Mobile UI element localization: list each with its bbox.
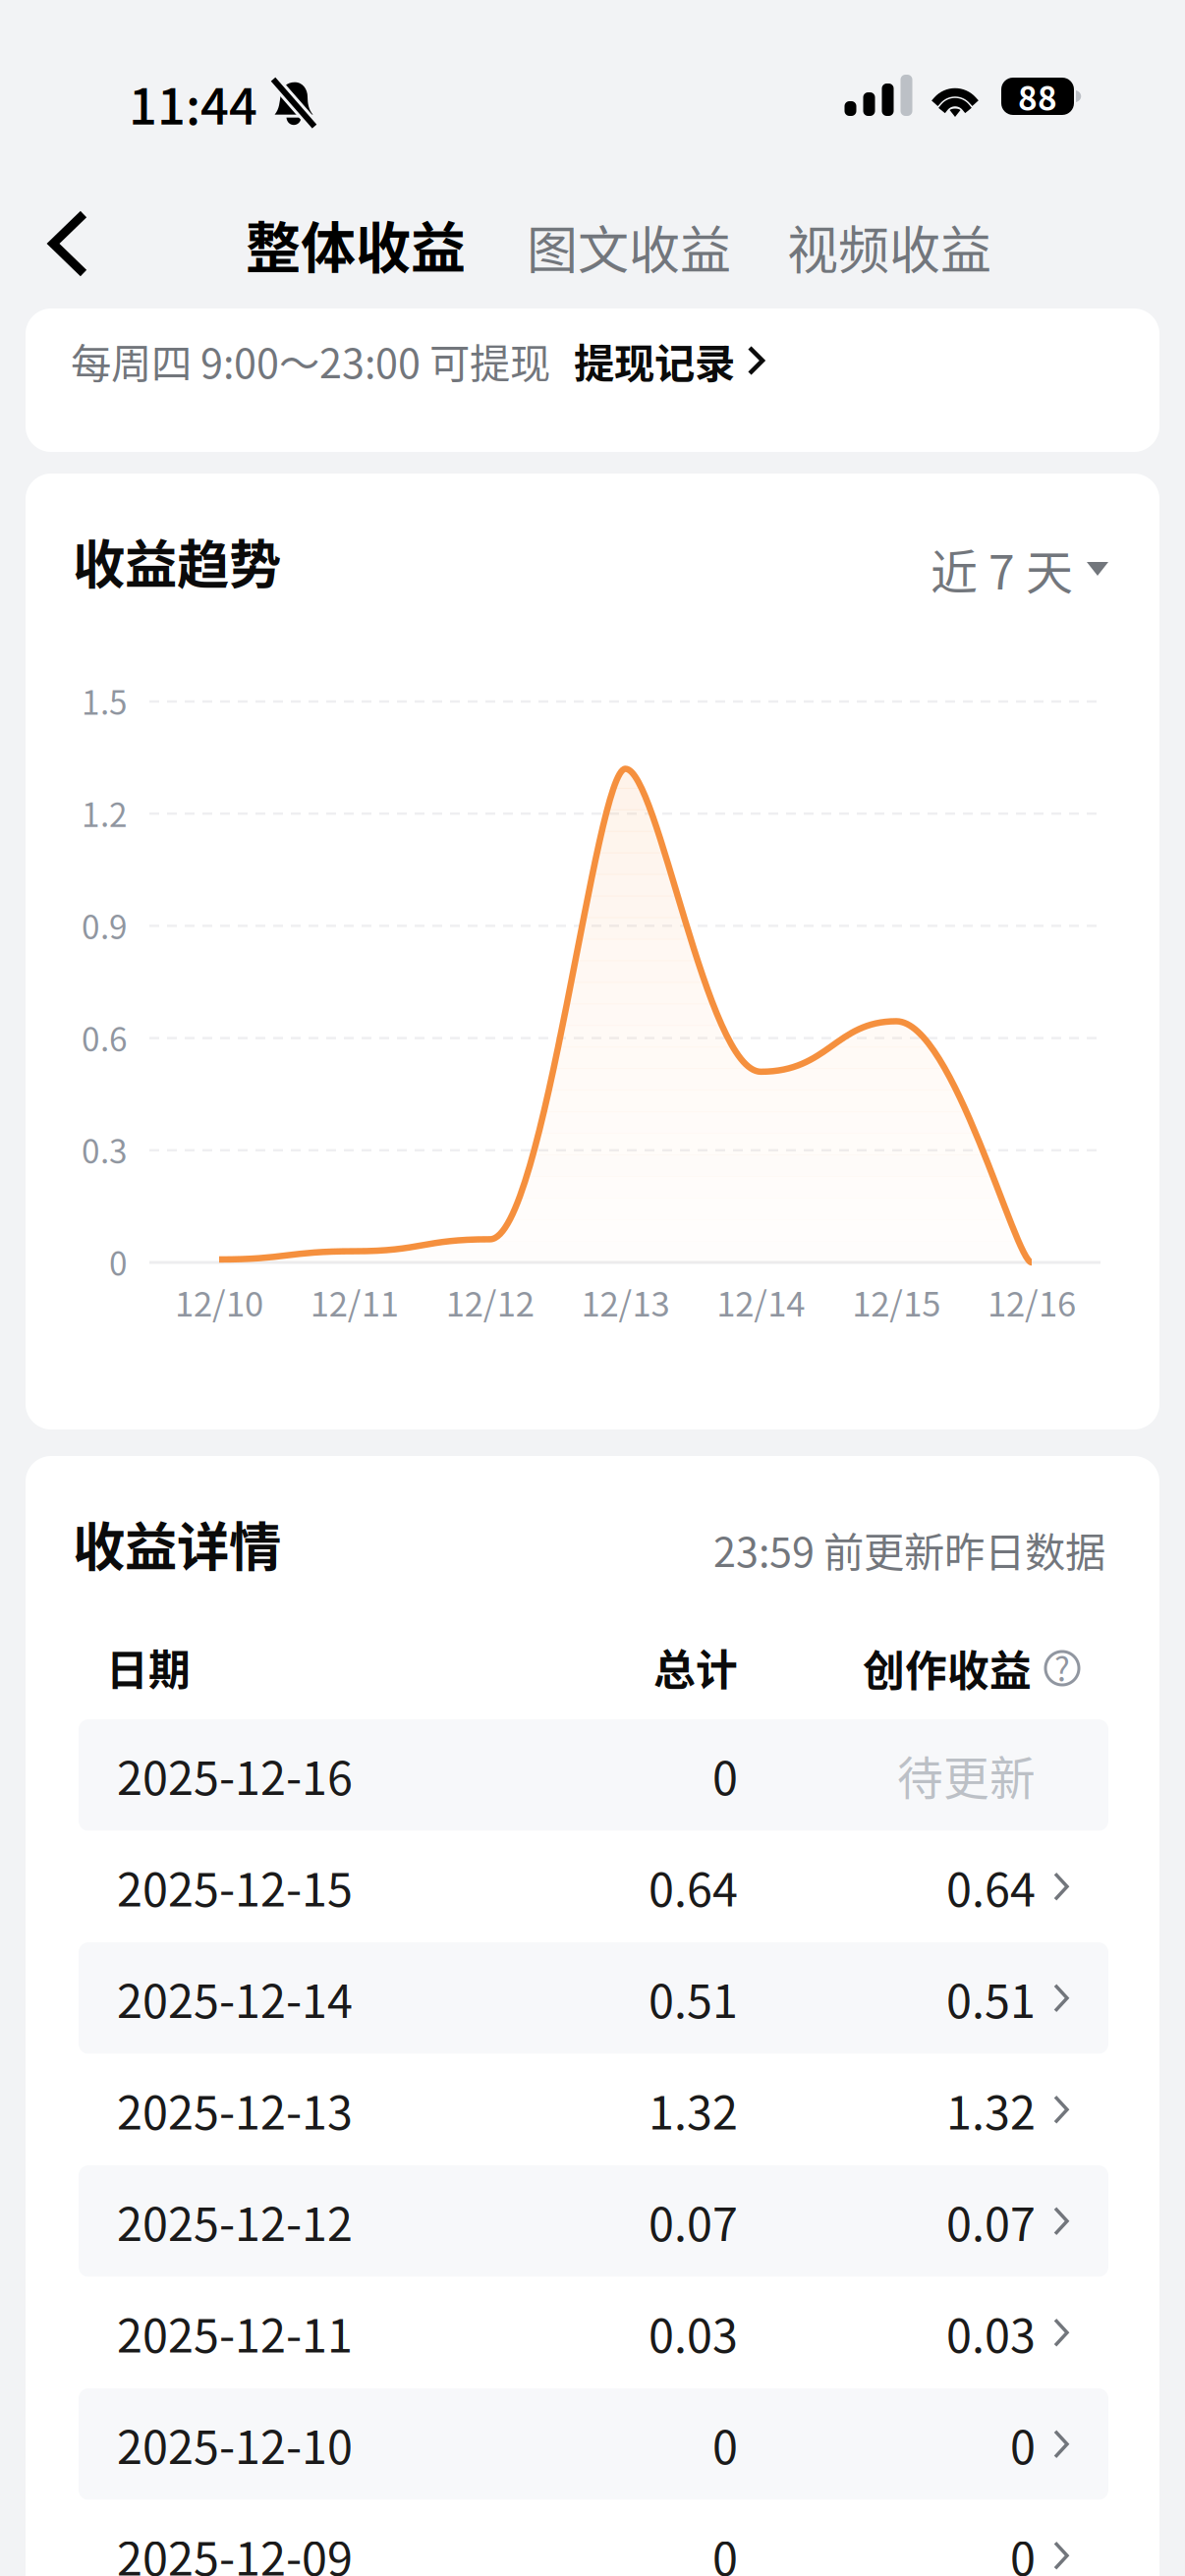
- staticText: 0.03: [649, 2299, 738, 2366]
- button[interactable]: 近 7 天: [931, 538, 1108, 599]
- staticText: 12/15: [852, 1277, 941, 1326]
- staticText: 0: [109, 1238, 128, 1285]
- staticText: 视频收益: [787, 210, 991, 284]
- staticText: ?: [1054, 1644, 1070, 1691]
- staticText: 0.51: [946, 1965, 1036, 2031]
- button[interactable]: 2025-12-12: [79, 2165, 1108, 2277]
- staticText: 0.03: [946, 2299, 1036, 2366]
- staticText: 1.5: [82, 677, 128, 724]
- staticText: 0: [712, 1742, 738, 1808]
- staticText: 2025-12-11: [117, 2299, 353, 2366]
- staticText: 0.51: [649, 1965, 738, 2031]
- button[interactable]: 2025-12-16: [79, 1719, 1108, 1831]
- button[interactable]: 2025-12-15: [79, 1831, 1108, 1942]
- staticText: 11:44: [129, 67, 257, 139]
- button[interactable]: 图文收益: [491, 196, 766, 298]
- button[interactable]: 2025-12-10: [79, 2388, 1108, 2500]
- staticText: 0.6: [82, 1013, 128, 1061]
- staticText: 2025-12-16: [117, 1742, 353, 1808]
- staticText: 总计: [653, 1637, 738, 1698]
- staticText: 0.3: [82, 1126, 128, 1173]
- staticText: 整体收益: [246, 204, 466, 284]
- button[interactable]: 视频收益: [752, 196, 1027, 298]
- staticText: 0.07: [649, 2188, 738, 2254]
- staticText: 0.64: [649, 1853, 738, 1920]
- button[interactable]: 2025-12-13: [79, 2054, 1108, 2165]
- staticText: 2025-12-09: [117, 2522, 353, 2576]
- button[interactable]: 2025-12-11: [79, 2277, 1108, 2388]
- staticText: 12/14: [717, 1277, 805, 1326]
- button[interactable]: 2025-12-14: [79, 1942, 1108, 2054]
- staticText: 1.32: [649, 2076, 738, 2143]
- staticText: 1.2: [82, 789, 128, 836]
- staticText: 0: [712, 2522, 738, 2576]
- staticText: 12/11: [310, 1277, 399, 1326]
- staticText: 12/10: [175, 1277, 263, 1326]
- button[interactable]: 每周四 9:00～23:00 可提现: [26, 308, 1159, 452]
- staticText: 0.07: [946, 2188, 1036, 2254]
- staticText: 收益趋势: [73, 523, 281, 599]
- staticText: 0: [712, 2411, 738, 2477]
- staticText: 1.32: [946, 2076, 1036, 2143]
- staticText: 0: [1010, 2411, 1036, 2477]
- button[interactable]: 返回: [48, 193, 89, 295]
- staticText: 23:59 前更新昨日数据: [713, 1520, 1105, 1579]
- staticText: 待更新: [897, 1742, 1036, 1808]
- staticText: 2025-12-12: [117, 2188, 353, 2254]
- staticText: 2025-12-15: [117, 1853, 353, 1920]
- staticText: 提现记录: [574, 331, 735, 390]
- staticText: 收益详情: [73, 1506, 281, 1581]
- button[interactable]: 整体收益: [208, 193, 503, 295]
- staticText: 0.64: [946, 1853, 1036, 1920]
- staticText: 12/13: [581, 1277, 670, 1326]
- staticText: 2025-12-14: [117, 1965, 353, 2031]
- button[interactable]: 2025-12-09: [79, 2500, 1108, 2576]
- staticText: 近 7 天: [931, 535, 1073, 603]
- staticText: 创作收益: [863, 1638, 1032, 1699]
- staticText: 88: [1018, 73, 1057, 120]
- staticText: 12/12: [446, 1277, 534, 1326]
- staticText: 12/16: [987, 1277, 1076, 1326]
- staticText: 0: [1010, 2522, 1036, 2576]
- staticText: 每周四 9:00～23:00 可提现: [71, 331, 550, 390]
- staticText: 2025-12-10: [117, 2411, 353, 2477]
- staticText: 0.9: [82, 901, 128, 949]
- staticText: 日期: [106, 1637, 191, 1698]
- staticText: 图文收益: [527, 210, 731, 284]
- staticText: 2025-12-13: [117, 2076, 353, 2143]
